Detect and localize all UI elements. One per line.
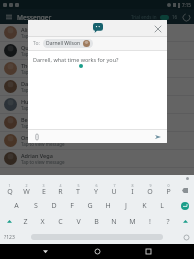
- staticText: To:: [33, 40, 40, 47]
- button[interactable]: M: [123, 214, 141, 230]
- staticText: 6: [95, 183, 98, 188]
- staticText: 8: [131, 183, 134, 188]
- staticText: 7: [113, 183, 116, 188]
- button[interactable]: Attach: [32, 132, 42, 142]
- button[interactable]: 6: [87, 182, 105, 198]
- staticText: I: [131, 187, 134, 197]
- button[interactable]: Dana Fox: [0, 78, 194, 95]
- staticText: Hugh Patel: [21, 98, 51, 105]
- staticText: Darrell, what time works for you?: [33, 56, 119, 63]
- button[interactable]: N: [105, 214, 123, 230]
- button[interactable]: A: [7, 198, 26, 214]
- button[interactable]: Darrell, what time works for you?: [28, 51, 167, 129]
- button[interactable]: ?: [159, 214, 177, 230]
- button[interactable]: Send: [153, 132, 163, 142]
- button[interactable]: Omar Vance: [0, 132, 194, 149]
- button[interactable]: G: [81, 198, 99, 214]
- button[interactable]: Refresh: [181, 12, 191, 22]
- staticText: Tap to view message: [21, 51, 65, 57]
- staticText: E: [42, 187, 46, 197]
- button[interactable]: Alison Hart: [0, 24, 194, 41]
- button[interactable]: [160, 15, 169, 20]
- staticText: G: [87, 201, 93, 211]
- staticText: U: [111, 187, 117, 197]
- staticText: X: [40, 217, 45, 227]
- button[interactable]: ?123: [4, 234, 15, 241]
- button[interactable]: 8: [123, 182, 141, 198]
- button[interactable]: L: [153, 198, 171, 214]
- staticText: Tap to view message: [21, 105, 65, 111]
- button[interactable]: To:: [28, 37, 167, 50]
- button[interactable]: J: [117, 198, 135, 214]
- staticText: W: [23, 187, 30, 197]
- button[interactable]: 5: [69, 182, 87, 198]
- staticText: Tap to view message: [21, 141, 65, 147]
- staticText: 2: [25, 183, 28, 188]
- button[interactable]: D: [45, 198, 63, 214]
- button[interactable]: H: [99, 198, 117, 214]
- button[interactable]: C: [51, 214, 69, 230]
- staticText: A: [14, 201, 19, 211]
- staticText: !: [149, 217, 151, 227]
- staticText: D: [51, 201, 57, 211]
- button[interactable]: Back: [39, 245, 52, 258]
- button[interactable]: Home: [91, 245, 104, 258]
- button[interactable]: !: [141, 214, 159, 230]
- staticText: Alison Hart: [21, 26, 51, 33]
- button[interactable]: Recents: [142, 245, 155, 258]
- button[interactable]: X: [34, 214, 51, 230]
- button[interactable]: Enter: [177, 198, 193, 214]
- staticText: K: [142, 201, 147, 211]
- staticText: ?: [166, 217, 170, 227]
- button[interactable]: Bea Lowe: [0, 114, 194, 131]
- button[interactable]: S: [26, 198, 45, 214]
- button[interactable]: Backspace: [177, 182, 193, 198]
- button[interactable]: 7: [105, 182, 123, 198]
- button[interactable]: 9: [141, 182, 159, 198]
- staticText: 4: [59, 183, 62, 188]
- staticText: Dana Fox: [21, 80, 46, 87]
- button[interactable]: K: [135, 198, 153, 214]
- staticText: Bea Lowe: [21, 116, 47, 123]
- button[interactable]: 3: [35, 182, 52, 198]
- button[interactable]: F: [63, 198, 81, 214]
- staticText: V: [76, 217, 81, 227]
- button[interactable]: B: [87, 214, 105, 230]
- button[interactable]: Theo Marsh: [0, 60, 194, 77]
- staticText: F: [70, 201, 74, 211]
- staticText: Tap to view message: [21, 123, 65, 129]
- staticText: J: [125, 201, 127, 211]
- button[interactable]: 2: [18, 182, 35, 198]
- staticText: 5: [77, 183, 80, 188]
- staticText: 9: [149, 183, 152, 188]
- button[interactable]: 4: [52, 182, 69, 198]
- staticText: Messenger: [17, 13, 52, 22]
- staticText: 16: [172, 14, 178, 20]
- staticText: N: [111, 217, 117, 227]
- staticText: P: [166, 187, 171, 197]
- button[interactable]: 0: [159, 182, 177, 198]
- button[interactable]: Emoji: [183, 234, 190, 241]
- staticText: L: [160, 201, 164, 211]
- staticText: Darnell Wilson: [46, 40, 81, 47]
- staticText: Adrian Vega: [21, 152, 53, 159]
- button[interactable]: Shift: [1, 214, 17, 230]
- button[interactable]: Menu: [4, 12, 14, 22]
- button[interactable]: Close: [152, 23, 163, 34]
- staticText: 7:15: [182, 2, 191, 8]
- button[interactable]: Adrian Vega: [0, 150, 194, 167]
- button[interactable]: V: [69, 214, 87, 230]
- staticText: H: [105, 201, 111, 211]
- button[interactable]: Hugh Patel: [0, 96, 194, 113]
- staticText: T: [76, 187, 80, 197]
- button[interactable]: Shift right: [177, 214, 193, 230]
- button[interactable]: 1: [1, 182, 18, 198]
- staticText: B: [94, 217, 99, 227]
- button[interactable]: Quincy Bell: [0, 42, 194, 59]
- button[interactable]: Z: [17, 214, 34, 230]
- staticText: M: [129, 217, 136, 227]
- staticText: Quincy Bell: [21, 44, 51, 51]
- staticText: Y: [94, 187, 98, 197]
- staticText: Tap to view message: [21, 69, 65, 75]
